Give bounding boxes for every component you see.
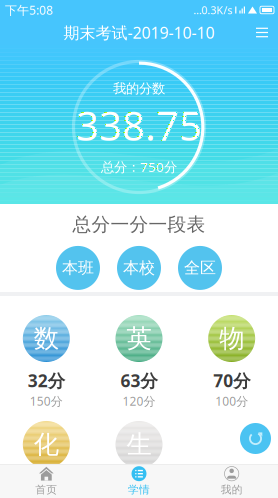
staticText: 32分	[28, 369, 65, 392]
button[interactable]: 本校	[117, 246, 161, 290]
staticText: 28分	[120, 475, 157, 498]
staticText: 期末考试-2019-10-10	[63, 22, 214, 43]
button[interactable]: Refresh	[240, 423, 271, 454]
staticText: 生	[126, 429, 151, 460]
button[interactable]: 首页	[0, 464, 93, 498]
staticText: 31分	[28, 475, 65, 498]
staticText: 63分	[120, 369, 157, 392]
staticText: 总分一分一段表	[72, 213, 205, 236]
button[interactable]: 生	[93, 421, 185, 498]
staticText: 英	[126, 323, 151, 354]
staticText: 数	[34, 323, 59, 354]
staticText: …0.3K/s	[193, 3, 235, 17]
staticText: 学情	[128, 483, 150, 496]
button[interactable]: Menu	[249, 20, 275, 45]
staticText: 本班	[62, 258, 94, 278]
staticText: 100分	[215, 393, 248, 409]
button[interactable]: 我的	[185, 464, 278, 498]
button[interactable]: 本班	[56, 246, 100, 290]
button[interactable]: 学情	[93, 464, 185, 498]
staticText: 化	[34, 429, 59, 460]
staticText: 物	[219, 323, 244, 354]
staticText: 150分	[30, 393, 63, 409]
button[interactable]: 物	[185, 315, 278, 409]
staticText: 70分	[213, 369, 250, 392]
staticText: 下午5:08	[5, 2, 53, 18]
staticText: 338.75	[76, 99, 202, 152]
button[interactable]: 化	[0, 421, 93, 498]
staticText: 我的	[221, 483, 243, 496]
button[interactable]: 数	[0, 315, 93, 409]
staticText: 首页	[35, 483, 57, 496]
button[interactable]: 全区	[178, 246, 222, 290]
staticText: 120分	[122, 393, 155, 409]
staticText: 我的分数	[113, 80, 165, 97]
staticText: 全区	[184, 258, 216, 278]
staticText: 本校	[123, 258, 155, 278]
button[interactable]: 英	[93, 315, 185, 409]
staticText: 总分：750分	[101, 158, 177, 176]
